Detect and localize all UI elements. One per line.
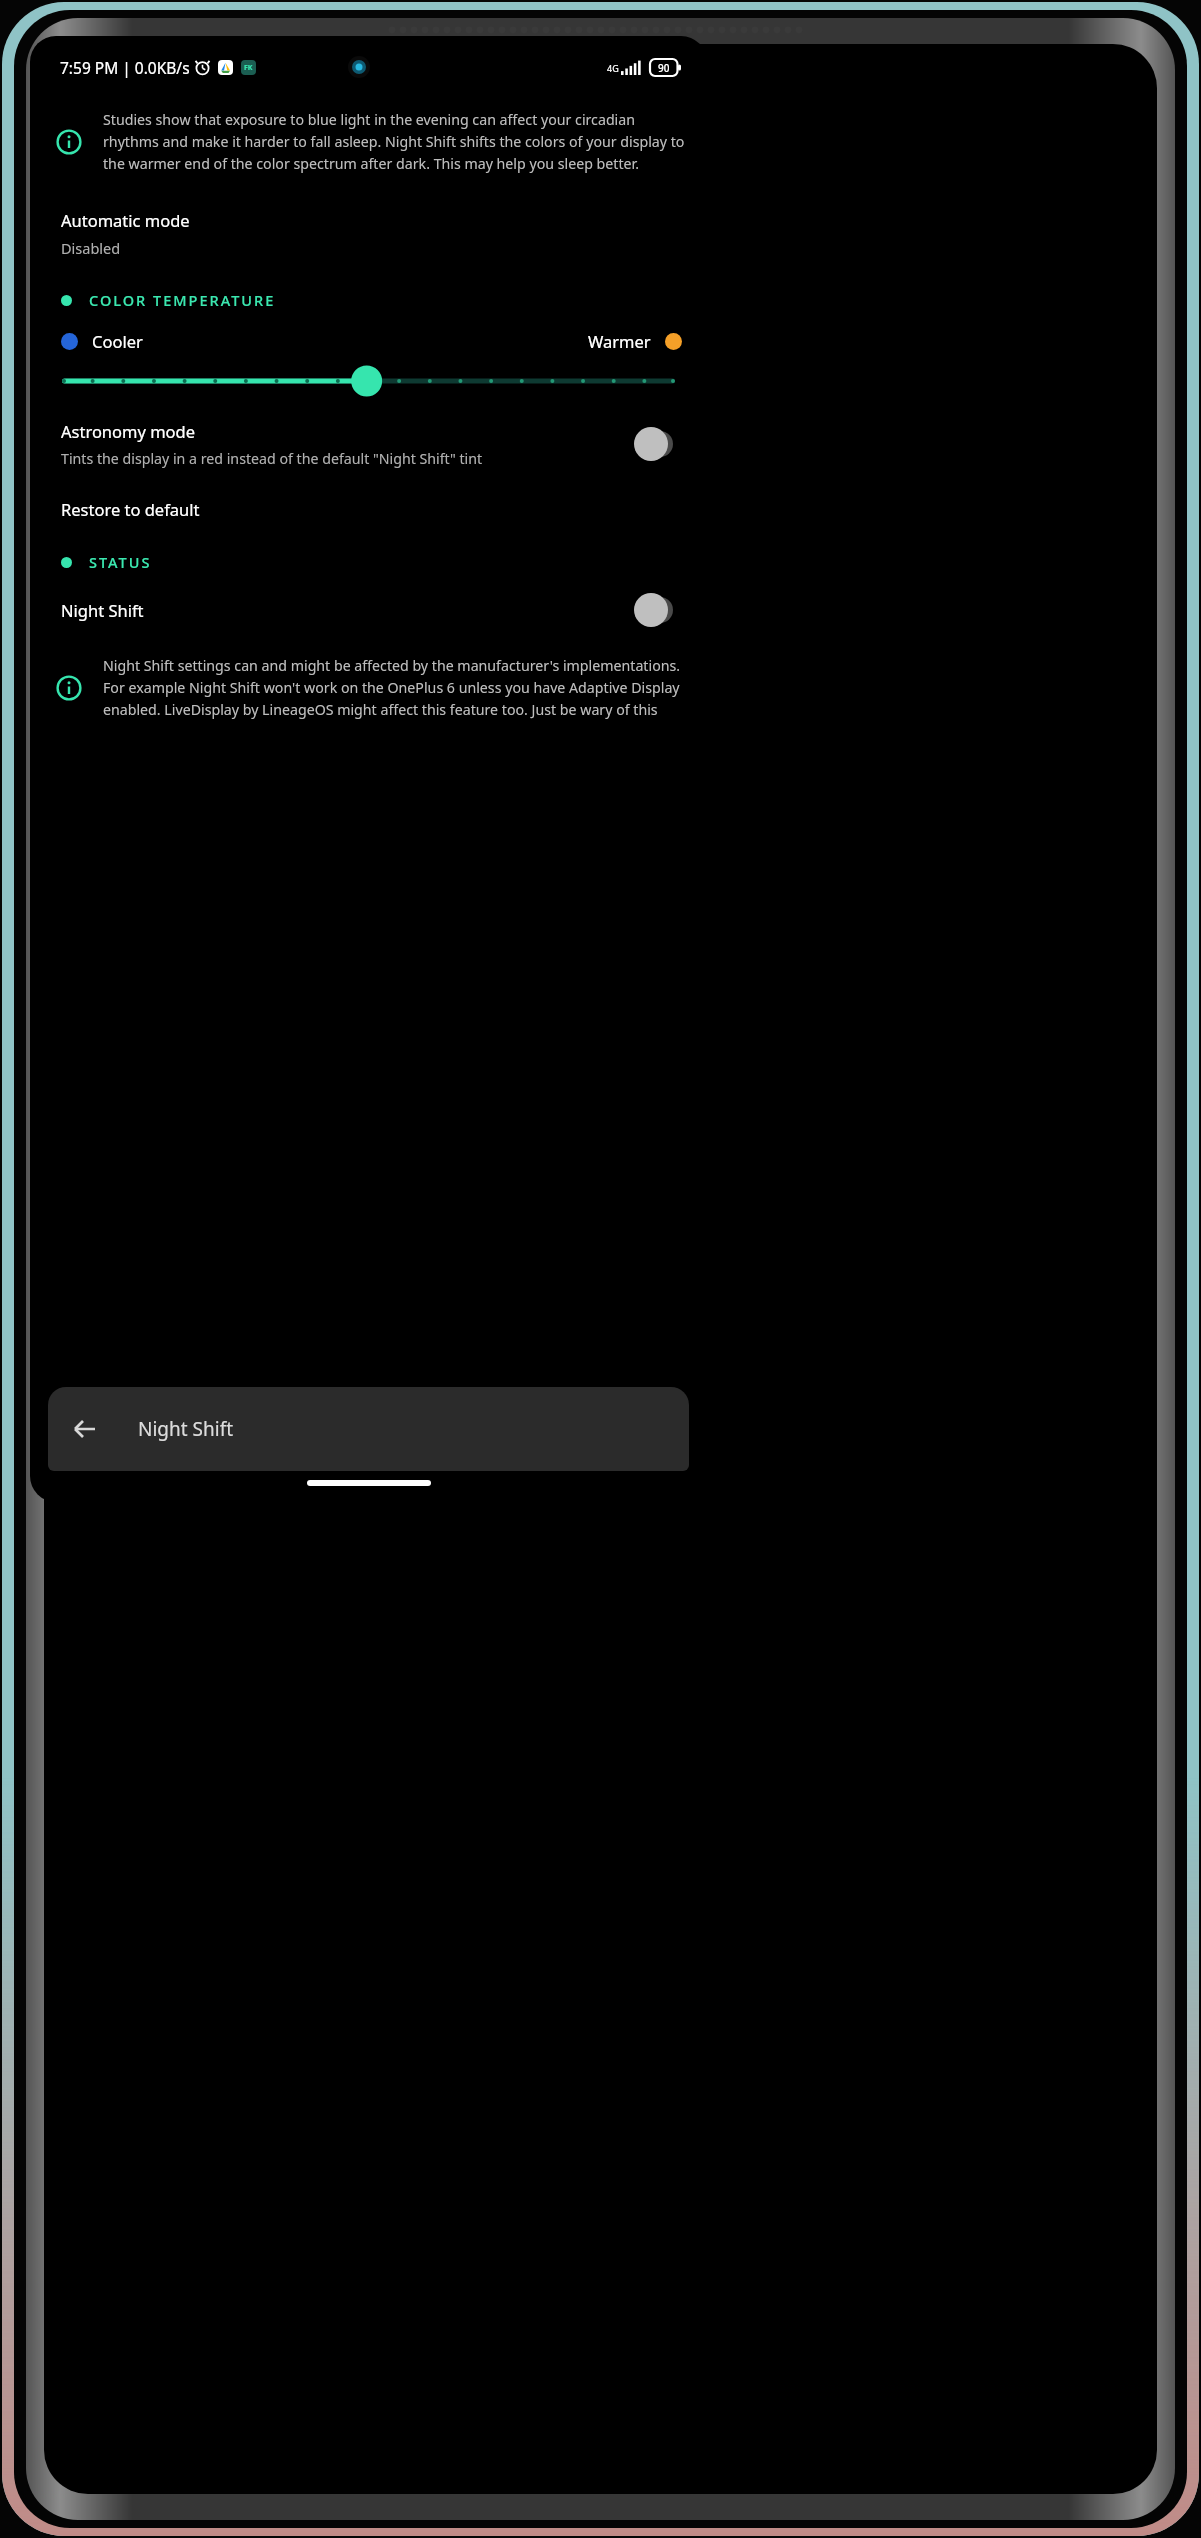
button[interactable]: Toggle [631, 594, 681, 626]
staticText: Studies show that exposure to blue light… [103, 110, 685, 173]
button[interactable]: Astronomy mode [30, 414, 707, 474]
staticText: Disabled [61, 238, 121, 258]
staticText: Night Shift settings can and might be af… [103, 656, 685, 719]
staticText: 90 [658, 61, 670, 75]
staticText: Restore to default [61, 498, 200, 520]
staticText: Astronomy mode [61, 420, 196, 442]
staticText: STATUS [89, 552, 152, 572]
button[interactable]: Night Shift [30, 588, 707, 632]
button[interactable]: Restore to default [30, 492, 707, 526]
staticText: Night Shift [61, 599, 144, 621]
button[interactable]: Color temperature slider [30, 362, 707, 400]
staticText: 4G [607, 62, 619, 74]
staticText: COLOR TEMPERATURE [89, 290, 276, 310]
staticText: Automatic mode [61, 209, 190, 231]
staticText: Tints the display in a red instead of th… [61, 449, 483, 468]
staticText: FK [244, 63, 253, 73]
staticText: Night Shift [138, 1416, 234, 1442]
button[interactable]: Toggle [631, 428, 681, 460]
button[interactable]: Automatic mode [30, 205, 707, 262]
button[interactable]: Back [62, 1406, 108, 1452]
staticText: Warmer [588, 330, 651, 352]
staticText: 7:59 PM | 0.0KB/s [60, 57, 190, 78]
staticText: Cooler [92, 330, 143, 352]
